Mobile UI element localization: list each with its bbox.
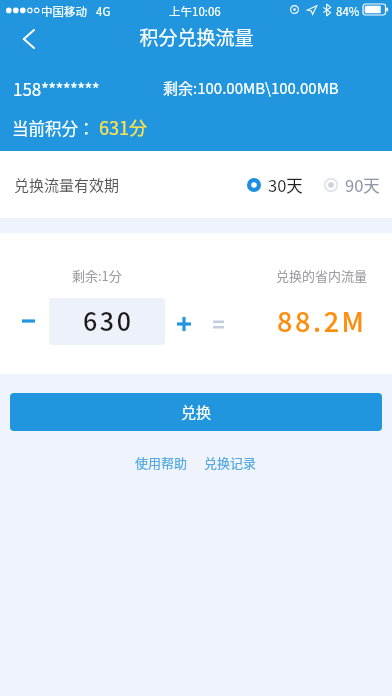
staticText: 兑换	[181, 401, 212, 423]
staticText: 631分	[99, 114, 147, 140]
button[interactable]: Decrease	[6, 299, 50, 343]
button[interactable]: 90天	[324, 173, 380, 197]
staticText: 84%	[336, 3, 360, 20]
staticText: 158	[13, 76, 42, 101]
button[interactable]: Back	[6, 17, 50, 61]
button[interactable]: 630	[49, 298, 165, 345]
staticText: 当前积分：	[12, 116, 95, 140]
staticText: 兑换流量有效期	[14, 174, 120, 196]
staticText: 88.2M	[277, 301, 367, 340]
button[interactable]: 使用帮助	[127, 449, 196, 476]
button[interactable]: 30天	[247, 173, 303, 197]
staticText: 中国移动	[41, 3, 87, 20]
staticText: 积分兑换流量	[139, 23, 254, 51]
button[interactable]: 兑换	[10, 393, 382, 431]
staticText: 630	[83, 302, 134, 338]
button[interactable]: Increase	[161, 301, 206, 346]
staticText: 兑换记录	[204, 453, 257, 472]
staticText: ********	[41, 76, 99, 101]
staticText: 上午10:06	[169, 3, 221, 20]
staticText: 剩余:100.00MB\100.00MB	[163, 77, 339, 99]
staticText: 4G	[96, 3, 111, 20]
staticText: 使用帮助	[135, 453, 188, 472]
staticText: 90天	[345, 173, 380, 197]
staticText: 兑换的省内流量	[276, 266, 368, 285]
button[interactable]: 兑换记录	[196, 449, 265, 476]
staticText: 剩余:1分	[72, 266, 122, 285]
staticText: 30天	[268, 173, 303, 197]
